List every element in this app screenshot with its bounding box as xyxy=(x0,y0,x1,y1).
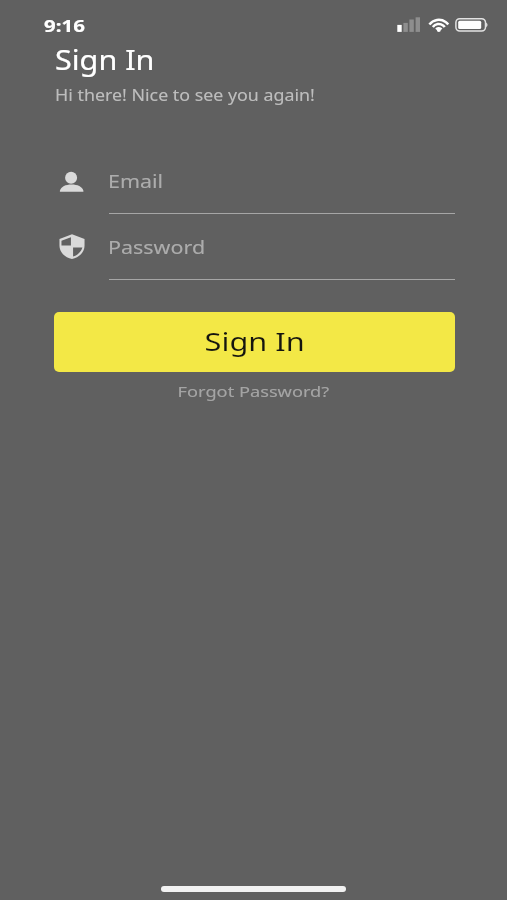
button[interactable]: Forgot Password? xyxy=(196,382,311,401)
staticText: Sign In xyxy=(205,324,305,359)
staticText: Password xyxy=(108,235,206,259)
button[interactable]: Email xyxy=(55,162,455,218)
staticText: 9:16 xyxy=(44,15,86,37)
button[interactable]: Sign In xyxy=(54,312,455,372)
staticText: Sign In xyxy=(55,41,154,78)
staticText: Email xyxy=(108,169,164,193)
staticText: Hi there! Nice to see you again! xyxy=(55,84,315,105)
button[interactable]: Password xyxy=(55,228,455,284)
